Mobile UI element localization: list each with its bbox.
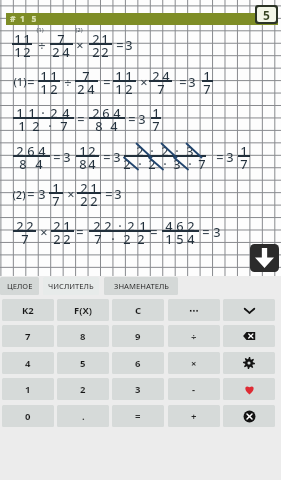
staticText: 7 bbox=[51, 30, 71, 47]
staticText: 4 bbox=[32, 142, 52, 159]
staticText: 4 bbox=[82, 155, 102, 172]
staticText: 1 bbox=[234, 142, 254, 159]
staticText: ⋯ bbox=[189, 305, 199, 316]
staticText: 3 bbox=[132, 110, 152, 127]
button[interactable]: 5 bbox=[57, 352, 109, 374]
staticText: ÷ bbox=[58, 73, 78, 90]
button[interactable]: ⋯ bbox=[168, 299, 220, 321]
staticText: 2 bbox=[47, 230, 67, 247]
staticText: = bbox=[122, 110, 142, 127]
staticText: K2 bbox=[22, 304, 34, 317]
button[interactable]: # 1 5 bbox=[6, 13, 278, 25]
staticText: · bbox=[142, 142, 162, 159]
button[interactable]: 0 bbox=[2, 405, 54, 427]
button[interactable]: C bbox=[112, 299, 164, 321]
button[interactable]: 1 bbox=[2, 378, 54, 400]
staticText: 9 bbox=[135, 330, 141, 343]
staticText: 2 bbox=[155, 142, 175, 159]
button[interactable]: Favorite bbox=[223, 378, 275, 400]
staticText: 8 bbox=[13, 155, 33, 172]
staticText: 1 bbox=[109, 80, 129, 97]
staticText: C bbox=[135, 304, 142, 317]
staticText: 2 bbox=[84, 192, 104, 209]
staticText: 1 bbox=[22, 104, 42, 121]
button[interactable]: ЗНАМЕНАТЕЛЬ bbox=[104, 277, 178, 295]
staticText: 7 bbox=[15, 230, 35, 247]
staticText: ÷ bbox=[191, 330, 197, 343]
button[interactable]: = bbox=[112, 405, 164, 427]
staticText: 3 bbox=[207, 223, 227, 240]
staticText: 2 bbox=[26, 117, 46, 134]
button[interactable]: 5 bbox=[257, 7, 276, 22]
staticText: 2 bbox=[131, 230, 151, 247]
staticText: 7 bbox=[192, 155, 212, 172]
staticText: = bbox=[110, 36, 130, 53]
staticText: · bbox=[103, 230, 123, 247]
button[interactable]: 6 bbox=[112, 352, 164, 374]
staticText: 6 bbox=[21, 142, 41, 159]
staticText: 1 bbox=[146, 104, 166, 121]
staticText: 1 bbox=[34, 80, 54, 97]
button[interactable]: 9 bbox=[112, 325, 164, 347]
button[interactable]: 4 bbox=[2, 352, 54, 374]
staticText: · bbox=[33, 104, 53, 121]
button[interactable]: 2 bbox=[57, 378, 109, 400]
button[interactable]: + bbox=[168, 405, 220, 427]
button[interactable]: F(X) bbox=[57, 299, 109, 321]
staticText: 7 bbox=[76, 67, 96, 84]
button[interactable]: Scroll down bbox=[250, 244, 279, 272]
staticText: 2 bbox=[57, 230, 77, 247]
staticText: 5 bbox=[80, 357, 86, 370]
staticText: 4 bbox=[25, 357, 31, 370]
staticText: · bbox=[130, 155, 150, 172]
staticText: 2 bbox=[181, 217, 201, 234]
button[interactable]: ÷ bbox=[168, 325, 220, 347]
staticText: ЧИСЛИТЕЛЬ bbox=[48, 281, 94, 291]
button[interactable]: × bbox=[168, 352, 220, 374]
staticText: 2 bbox=[95, 43, 115, 60]
staticText: 1 bbox=[84, 179, 104, 196]
staticText: 4 bbox=[29, 155, 49, 172]
staticText: 8 bbox=[80, 330, 86, 343]
button[interactable]: 3 bbox=[112, 378, 164, 400]
staticText: 2 bbox=[17, 43, 37, 60]
staticText: ÷ bbox=[32, 36, 52, 53]
staticText: 3 bbox=[167, 155, 187, 172]
staticText: · bbox=[110, 217, 130, 234]
staticText: - bbox=[192, 383, 196, 396]
button[interactable]: Clear bbox=[223, 405, 275, 427]
staticText: 2 bbox=[44, 80, 64, 97]
staticText: 4 bbox=[104, 117, 124, 134]
staticText: 7 bbox=[25, 330, 31, 343]
button[interactable]: 7 bbox=[2, 325, 54, 347]
staticText: 1 bbox=[17, 30, 37, 47]
staticText: 3 bbox=[32, 185, 52, 202]
button[interactable]: - bbox=[168, 378, 220, 400]
staticText: = bbox=[47, 148, 67, 165]
staticText: 7 bbox=[146, 117, 166, 134]
staticText: × bbox=[70, 36, 90, 53]
other: Clear bbox=[243, 410, 256, 423]
staticText: 1 bbox=[197, 67, 217, 84]
other: Favorite bbox=[243, 383, 256, 396]
staticText: = bbox=[71, 110, 91, 127]
staticText: 1 bbox=[73, 142, 93, 159]
staticText: = bbox=[173, 73, 193, 90]
staticText: = bbox=[210, 148, 230, 165]
staticText: 4 bbox=[56, 104, 76, 121]
staticText: 0 bbox=[25, 410, 31, 423]
button[interactable]: ЦЕЛОЕ bbox=[0, 277, 39, 295]
staticText: 4 bbox=[107, 104, 127, 121]
button[interactable]: K2 bbox=[2, 299, 54, 321]
staticText: 2 bbox=[10, 217, 30, 234]
button[interactable]: Expand bbox=[223, 299, 275, 321]
staticText: 1 bbox=[8, 43, 28, 60]
staticText: 2 bbox=[119, 80, 139, 97]
button[interactable]: ЧИСЛИТЕЛЬ bbox=[43, 277, 99, 295]
button[interactable]: 8 bbox=[57, 325, 109, 347]
button[interactable]: Settings bbox=[223, 352, 275, 374]
staticText: 2 bbox=[117, 230, 137, 247]
staticText: = bbox=[97, 73, 117, 90]
button[interactable]: . bbox=[57, 405, 109, 427]
button[interactable]: Backspace bbox=[223, 325, 275, 347]
